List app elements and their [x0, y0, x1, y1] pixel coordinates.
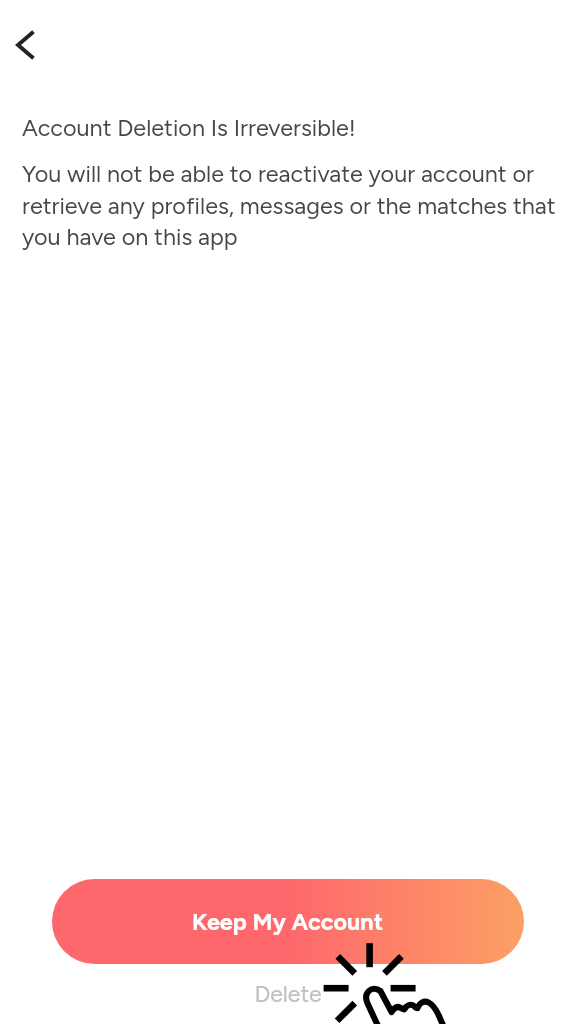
staticText: Account Deletion Is Irreversible!: [22, 114, 356, 142]
button[interactable]: Delete: [0, 964, 576, 1024]
button[interactable]: Back: [0, 0, 50, 90]
staticText: Keep My Account: [192, 908, 384, 936]
button[interactable]: Keep My Account: [52, 879, 524, 964]
staticText: You will not be able to reactivate your …: [22, 160, 566, 251]
staticText: Delete: [254, 980, 322, 1008]
